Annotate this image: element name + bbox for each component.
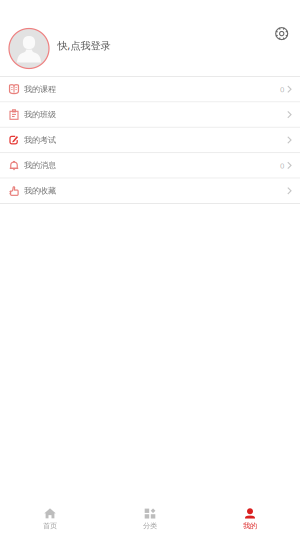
button[interactable]: 我的 bbox=[200, 493, 300, 533]
staticText: 首页 bbox=[43, 521, 57, 530]
staticText: 0 bbox=[280, 160, 284, 171]
button[interactable]: Settings bbox=[275, 0, 300, 40]
staticText: 我的班级 bbox=[24, 109, 56, 120]
button[interactable]: 我的收藏 bbox=[0, 179, 300, 203]
staticText: 分类 bbox=[143, 521, 157, 530]
button[interactable]: 我的消息 bbox=[0, 153, 300, 178]
staticText: 我的课程 bbox=[24, 84, 56, 94]
button[interactable]: 我的班级 bbox=[0, 102, 300, 127]
button[interactable]: 首页 bbox=[0, 493, 100, 533]
staticText: 我的收藏 bbox=[24, 186, 56, 196]
staticText: 0 bbox=[280, 84, 284, 94]
button[interactable]: 我的课程 bbox=[0, 77, 300, 101]
staticText: 我的考试 bbox=[24, 135, 56, 145]
button[interactable]: 快,点我登录 bbox=[0, 0, 300, 76]
staticText: 我的消息 bbox=[24, 160, 56, 170]
button[interactable]: 我的考试 bbox=[0, 128, 300, 152]
staticText: 我的 bbox=[243, 521, 257, 530]
button[interactable]: 分类 bbox=[100, 493, 200, 533]
staticText: 快,点我登录 bbox=[57, 38, 110, 52]
